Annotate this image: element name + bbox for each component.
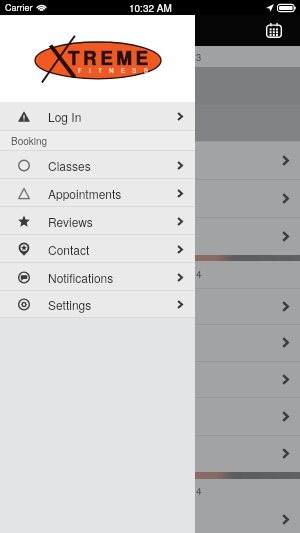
button[interactable]: Log In (0, 102, 195, 131)
staticText: 4 (196, 484, 202, 498)
button[interactable]: Contact (0, 235, 195, 263)
button[interactable] (0, 179, 300, 217)
staticText: Carrier (5, 1, 33, 14)
staticText: Log In (48, 108, 82, 125)
button[interactable] (0, 397, 300, 435)
staticText: Booking (11, 134, 48, 148)
staticText: FITNESS (78, 66, 156, 75)
staticText: 4 (196, 267, 202, 281)
button[interactable]: Calendar (266, 23, 282, 38)
staticText: Contact (48, 241, 90, 258)
staticText: Classes (48, 157, 91, 174)
staticText: Notifications (48, 269, 114, 286)
staticText: October 13 (152, 50, 202, 64)
staticText: 10:32 AM (129, 1, 172, 15)
staticText: Settings (48, 296, 92, 313)
button[interactable]: Notifications (0, 263, 195, 291)
button[interactable] (0, 435, 300, 472)
staticText: TREME (68, 44, 152, 71)
button[interactable]: Classes (0, 151, 195, 179)
staticText: Appointments (48, 185, 122, 202)
button[interactable] (0, 288, 300, 324)
button[interactable] (0, 141, 300, 179)
button[interactable]: Appointments (0, 179, 195, 207)
button[interactable] (0, 361, 300, 397)
staticText: Reviews (48, 213, 93, 230)
button[interactable] (0, 217, 300, 255)
button[interactable] (0, 324, 300, 361)
button[interactable]: Settings (0, 291, 195, 318)
button[interactable]: Reviews (0, 207, 195, 235)
